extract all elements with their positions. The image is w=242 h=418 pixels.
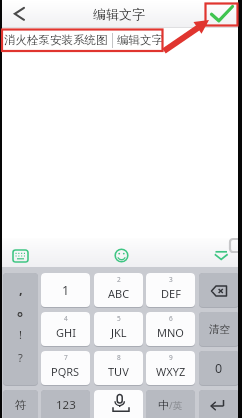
staticText: 中/英 (158, 398, 183, 412)
button[interactable]: 4 (41, 312, 90, 346)
button[interactable]: 5 (94, 312, 143, 346)
button[interactable]: 8 (94, 351, 143, 385)
button[interactable]: 9 (146, 351, 195, 385)
button[interactable] (94, 390, 143, 418)
staticText: 9 (169, 353, 173, 362)
staticText: 4 (64, 314, 68, 323)
button[interactable] (106, 239, 136, 266)
staticText: 1 (62, 282, 70, 299)
button[interactable]: 清空 (199, 312, 239, 346)
button[interactable]: 6 (146, 312, 195, 346)
staticText: 7 (64, 353, 68, 362)
staticText: ABC (108, 286, 130, 301)
button[interactable]: 0 (199, 351, 239, 385)
button[interactable] (199, 273, 239, 307)
staticText: 3 (169, 275, 173, 284)
staticText: DEF (161, 286, 181, 301)
button[interactable]: 2 (94, 273, 143, 307)
button[interactable]: 编辑文字 (117, 33, 163, 47)
staticText: ? (18, 350, 23, 365)
button[interactable]: 中/英 (146, 390, 195, 418)
button[interactable] (0, 238, 36, 265)
button[interactable] (0, 0, 34, 27)
staticText: 6 (169, 314, 173, 323)
button[interactable]: 123 (41, 390, 90, 418)
staticText: 0 (215, 360, 223, 377)
button[interactable]: 1 (41, 273, 90, 307)
button[interactable] (202, 0, 242, 27)
staticText: , (19, 280, 23, 298)
staticText: 123 (56, 397, 76, 413)
staticText: JKL (111, 325, 127, 340)
button[interactable]: 7 (41, 351, 90, 385)
staticText: 2 (117, 275, 121, 284)
button[interactable]: , (3, 273, 38, 385)
staticText: 符 (15, 398, 27, 412)
staticText: GHI (56, 325, 76, 340)
button[interactable]: 符 (3, 390, 38, 418)
staticText: PQRS (51, 364, 80, 379)
staticText: 清空 (209, 323, 230, 336)
staticText: 8 (117, 353, 121, 362)
staticText: TUV (108, 364, 129, 379)
staticText: MNO (157, 325, 184, 340)
staticText: ! (19, 327, 22, 342)
staticText: 5 (117, 314, 121, 323)
button[interactable] (199, 390, 239, 418)
staticText: WXYZ (156, 364, 186, 379)
button[interactable]: 3 (146, 273, 195, 307)
button[interactable]: 消火栓泵安装系统图 (4, 33, 108, 47)
staticText: 编辑文字 (93, 6, 145, 22)
button[interactable] (204, 239, 234, 266)
